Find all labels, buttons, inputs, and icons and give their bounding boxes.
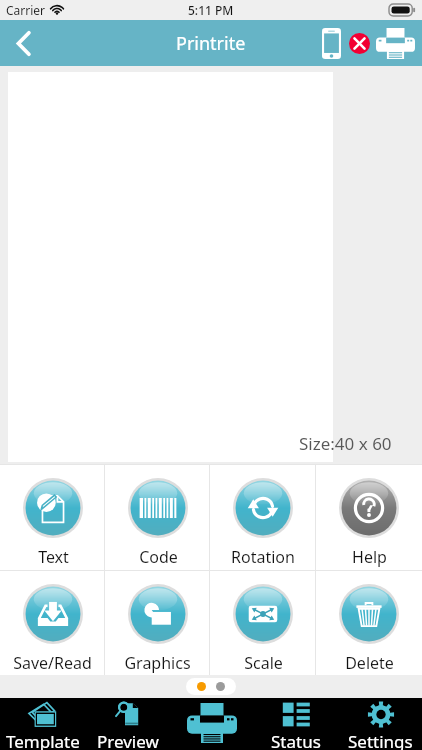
button[interactable]: Status [254,698,338,750]
staticText: Rotation [231,546,295,568]
button[interactable]: Print [373,21,417,65]
staticText: Template [6,730,80,750]
staticText: Help [352,546,387,568]
staticText: Delete [345,652,394,674]
button[interactable]: Code [105,464,210,570]
button[interactable]: Settings [338,698,422,750]
button[interactable]: Help [316,464,422,570]
staticText: Graphics [124,652,191,674]
button[interactable]: Back [0,20,48,66]
button[interactable]: Rotation [210,464,316,570]
button[interactable]: Device [317,21,345,65]
button[interactable]: Not connected [345,21,373,65]
button[interactable]: Graphics [105,570,210,675]
button[interactable]: Scale [210,570,316,675]
staticText: Code [139,546,178,568]
staticText: Scale [244,652,283,674]
staticText: Settings [348,730,413,750]
button[interactable]: Preview [85,698,170,750]
staticText: Preview [97,730,159,750]
staticText: Save/Read [13,652,92,674]
staticText: 5:11 PM [188,2,234,18]
staticText: Printrite [176,31,246,56]
button[interactable]: Delete [316,570,422,675]
button[interactable]: Text [0,464,105,570]
button[interactable]: Template [0,698,85,750]
staticText: Status [271,730,321,750]
button[interactable]: Print [170,698,254,750]
button[interactable]: Save/Read [0,570,105,675]
staticText: Carrier [6,2,46,18]
staticText: Size:40 x 60 [299,432,392,455]
staticText: Text [38,546,69,568]
